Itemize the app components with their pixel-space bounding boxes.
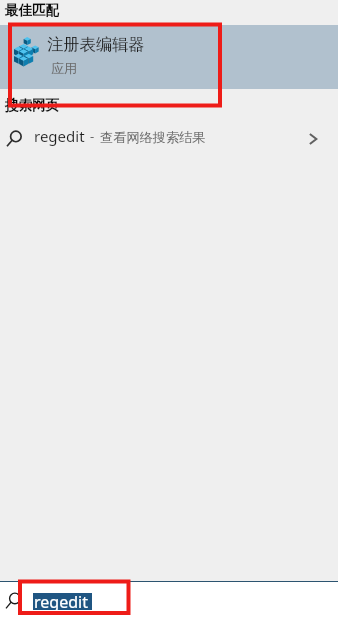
staticText: 搜索网页 [5, 97, 59, 114]
staticText: 最佳匹配 [5, 2, 59, 19]
staticText: regedit [34, 591, 88, 613]
staticText: 应用 [51, 60, 77, 76]
button[interactable]: regedit [0, 582, 338, 620]
staticText: 注册表编辑器 [47, 34, 145, 55]
staticText: - [90, 127, 95, 145]
button[interactable]: regedit [0, 121, 338, 157]
button[interactable]: More results [295, 121, 331, 157]
staticText: 查看网络搜索结果 [100, 129, 206, 146]
staticText: regedit [34, 126, 85, 146]
button[interactable]: 注册表编辑器 [0, 25, 338, 89]
